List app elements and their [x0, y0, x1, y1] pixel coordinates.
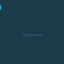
staticText: Daily goal met [22, 33, 43, 37]
